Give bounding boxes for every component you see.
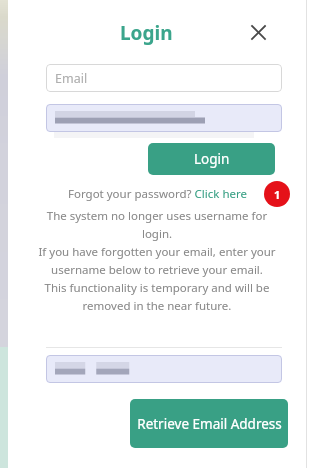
staticText: Email bbox=[55, 70, 88, 87]
button[interactable]: Text field bbox=[46, 355, 282, 383]
staticText: Login bbox=[120, 20, 173, 46]
button[interactable]: Email bbox=[46, 64, 282, 92]
staticText: The system no longer uses username for l… bbox=[38, 208, 276, 313]
staticText: Login bbox=[194, 150, 230, 168]
staticText: Forgot your password? Click here bbox=[68, 186, 247, 202]
button[interactable]: 1 notification bbox=[264, 181, 290, 207]
button[interactable]: Login bbox=[148, 143, 275, 175]
staticText: 1 bbox=[274, 187, 281, 202]
button[interactable]: Forgot your password? Click here bbox=[8, 185, 306, 203]
button[interactable]: Login bbox=[120, 20, 173, 46]
button[interactable]: Text field bbox=[46, 104, 282, 132]
button[interactable]: Close bbox=[242, 16, 274, 48]
button[interactable]: Retrieve Email Address bbox=[130, 399, 288, 448]
staticText: Retrieve Email Address bbox=[137, 415, 282, 433]
